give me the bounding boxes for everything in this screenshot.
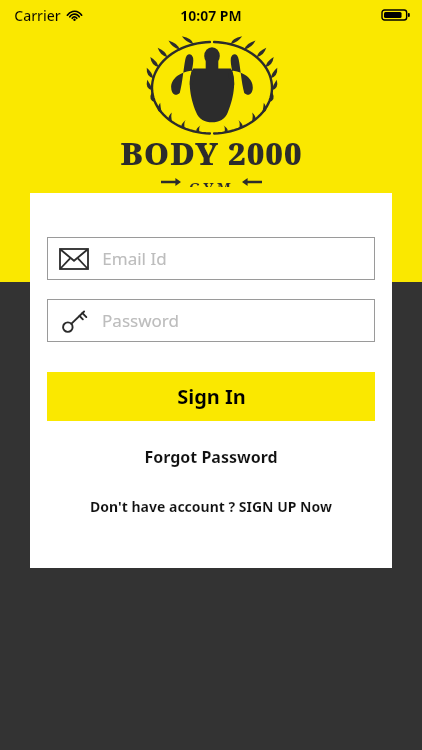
staticText: GYM: [189, 177, 234, 187]
staticText: Don't have account ? SIGN UP Now: [90, 497, 332, 516]
button[interactable]: Email Id field: [47, 237, 375, 280]
button[interactable]: Sign In: [47, 372, 375, 421]
button[interactable]: Don't have account ? SIGN UP Now: [30, 492, 392, 520]
staticText: BODY 2000: [120, 132, 303, 174]
button[interactable]: Password field: [47, 299, 375, 342]
staticText: Email Id: [102, 247, 167, 270]
staticText: Carrier: [14, 6, 61, 25]
button[interactable]: Forgot Password: [30, 442, 392, 472]
staticText: 10:07 PM: [180, 6, 242, 25]
staticText: Forgot Password: [144, 446, 278, 468]
staticText: Sign In: [177, 383, 246, 410]
staticText: Password: [102, 309, 179, 332]
